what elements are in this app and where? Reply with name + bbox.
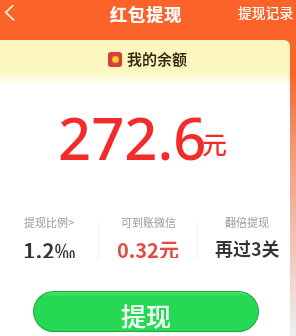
staticText: 提现 — [121, 297, 172, 331]
staticText: 提现记录 — [238, 2, 294, 22]
staticText: 再过3关 — [215, 235, 280, 258]
button[interactable]: 提现比例> — [0, 214, 98, 258]
button[interactable]: 翻倍提现 — [198, 214, 296, 258]
staticText: 0.32元 — [117, 235, 179, 258]
button[interactable]: 红包提现 — [108, 0, 185, 27]
staticText: 可到账微信 — [121, 214, 176, 230]
staticText: 红包提现 — [110, 1, 183, 26]
button[interactable]: 可到账微信 — [99, 214, 197, 258]
staticText: 1.2‰ — [23, 235, 76, 258]
button[interactable]: 提现记录 — [236, 0, 296, 24]
button[interactable]: 提现 — [34, 292, 258, 331]
staticText: 272.6 — [58, 98, 207, 177]
staticText: 元 — [202, 125, 228, 161]
staticText: 翻倍提现 — [225, 214, 269, 230]
button[interactable]: Back — [0, 0, 26, 26]
staticText: 我的余额 — [127, 48, 188, 70]
staticText: 提现比例> — [24, 214, 75, 230]
